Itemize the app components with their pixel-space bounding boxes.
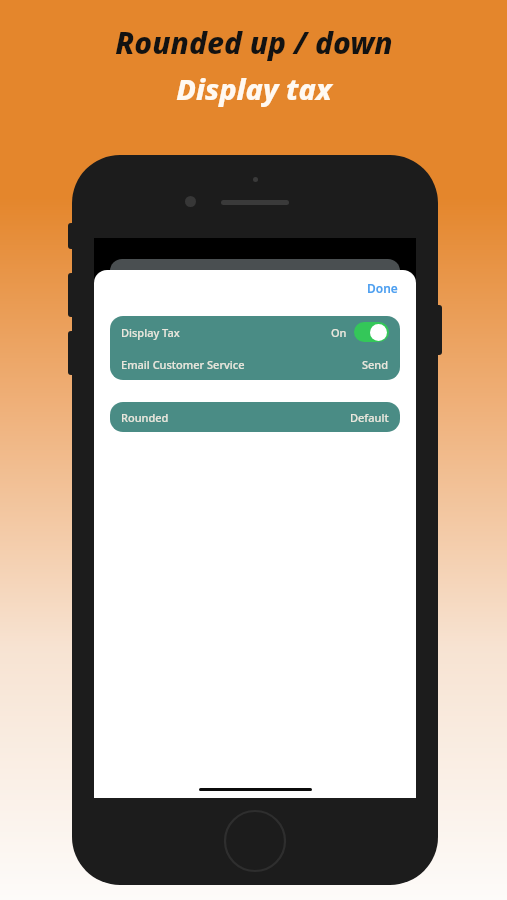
staticText: Email Customer Service	[121, 357, 245, 372]
button[interactable]: Rounded	[110, 402, 400, 432]
staticText: Done	[367, 280, 398, 296]
staticText: Default	[350, 410, 389, 425]
button[interactable]: Done	[363, 276, 402, 300]
button[interactable]: Email Customer Service	[110, 348, 400, 380]
button[interactable]: Display Tax	[110, 316, 400, 348]
button[interactable]: Display Tax toggle, on	[354, 322, 389, 342]
staticText: Rounded	[121, 410, 169, 425]
staticText: Display tax	[176, 69, 332, 108]
staticText: Rounded up / down	[115, 22, 393, 63]
staticText: On	[331, 325, 347, 340]
staticText: Display Tax	[121, 325, 180, 340]
staticText: Send	[362, 357, 389, 372]
